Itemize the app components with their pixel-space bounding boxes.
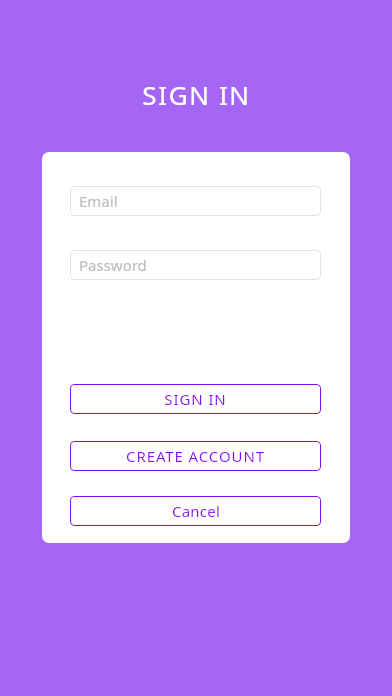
staticText: Password — [79, 255, 147, 275]
button[interactable]: CREATE ACCOUNT — [70, 441, 321, 471]
staticText: Cancel — [172, 501, 220, 521]
staticText: Email — [79, 191, 118, 211]
staticText: SIGN IN — [164, 389, 227, 409]
button[interactable]: SIGN IN — [70, 384, 321, 414]
staticText: SIGN IN — [142, 77, 251, 112]
button[interactable]: Email — [70, 186, 321, 216]
button[interactable]: Cancel — [70, 496, 321, 526]
staticText: CREATE ACCOUNT — [126, 446, 265, 466]
button[interactable]: Password — [70, 250, 321, 280]
